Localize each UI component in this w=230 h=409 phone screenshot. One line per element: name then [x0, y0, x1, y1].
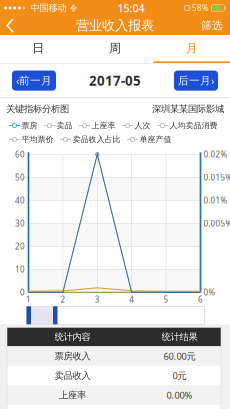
- staticText: 关键指标分析图: [6, 103, 69, 115]
- staticText: 上座率: [91, 121, 115, 130]
- staticText: 40: [15, 195, 25, 206]
- staticText: 卖品: [56, 121, 72, 130]
- staticText: 后一月: [178, 74, 211, 87]
- staticText: 上座率: [59, 389, 86, 401]
- staticText: 0.02%: [203, 149, 227, 160]
- staticText: 0.01%: [203, 195, 227, 206]
- button[interactable]: 人均卖品消费: [157, 121, 217, 130]
- staticText: 0%: [203, 287, 215, 298]
- staticText: 平均票价: [21, 134, 53, 144]
- staticText: 令: [69, 3, 77, 13]
- button[interactable]: 单座产值: [127, 134, 171, 144]
- button[interactable]: 月: [153, 35, 230, 63]
- staticText: ‹: [16, 73, 19, 88]
- staticText: 卖品收入: [54, 370, 90, 381]
- staticText: 前一月: [19, 74, 52, 87]
- staticText: 60.00元: [163, 350, 195, 362]
- staticText: 58%: [192, 3, 209, 13]
- staticText: 中国移动: [30, 2, 66, 14]
- button[interactable]: ‹: [12, 70, 56, 91]
- staticText: 营业收入报表: [76, 17, 154, 34]
- staticText: 2: [60, 294, 65, 305]
- staticText: 深圳某某国际影城: [152, 103, 224, 115]
- staticText: 50: [15, 172, 25, 183]
- button[interactable]: 筛选: [194, 15, 230, 36]
- button[interactable]: 返回: [0, 15, 27, 35]
- staticText: 卖品收入占比: [72, 134, 120, 144]
- staticText: 0.005%: [203, 218, 230, 229]
- button[interactable]: 平均票价: [9, 134, 53, 144]
- staticText: 30: [15, 218, 25, 229]
- button[interactable]: 周: [77, 35, 153, 63]
- staticText: 3: [95, 294, 100, 305]
- staticText: 5: [164, 294, 169, 305]
- staticText: 月: [186, 41, 198, 55]
- staticText: 票房收入: [54, 350, 90, 362]
- staticText: 0: [20, 287, 25, 298]
- staticText: 统计内容: [54, 331, 90, 343]
- staticText: 0.00%: [166, 389, 192, 401]
- button[interactable]: 卖品: [44, 121, 72, 130]
- staticText: 20: [15, 241, 25, 252]
- button[interactable]: 票房: [9, 121, 37, 130]
- staticText: 4: [129, 294, 134, 305]
- staticText: 0元: [172, 369, 186, 382]
- staticText: 1: [26, 294, 31, 305]
- staticText: 筛选: [201, 19, 223, 32]
- staticText: 统计结果: [161, 331, 197, 343]
- button[interactable]: 上座率: [79, 121, 115, 130]
- staticText: 日: [32, 41, 44, 55]
- staticText: 票房: [21, 121, 37, 130]
- staticText: 60: [15, 149, 25, 160]
- staticText: 人次: [134, 121, 150, 130]
- button[interactable]: 日: [0, 35, 77, 63]
- staticText: 6: [198, 294, 203, 305]
- button[interactable]: 卖品收入占比: [60, 134, 120, 144]
- staticText: 2017-05: [89, 72, 141, 89]
- staticText: 15:04: [117, 1, 144, 15]
- button[interactable]: 人次: [122, 121, 150, 130]
- staticText: 人均卖品消费: [169, 121, 217, 130]
- staticText: 单座产值: [139, 134, 171, 144]
- button[interactable]: 后一月: [174, 70, 218, 91]
- staticText: 周: [109, 41, 121, 55]
- staticText: 10: [15, 264, 25, 275]
- staticText: ›: [211, 73, 214, 88]
- staticText: 0.015%: [203, 172, 230, 183]
